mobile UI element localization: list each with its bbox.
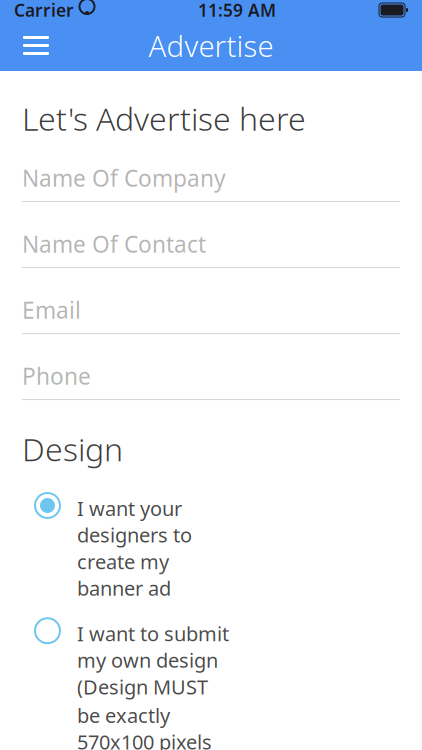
staticText: 11:59 AM bbox=[198, 0, 276, 21]
staticText: I want your designers to create my banne… bbox=[77, 495, 192, 601]
button[interactable]: I want your designers to create my banne… bbox=[34, 492, 400, 601]
staticText: I want to submit my own design (Design M… bbox=[77, 620, 229, 700]
staticText: Carrier bbox=[14, 0, 74, 21]
button[interactable]: Name Of Contact bbox=[22, 229, 400, 267]
button[interactable]: Menu bbox=[12, 23, 60, 67]
button[interactable]: Phone bbox=[22, 361, 400, 399]
button[interactable]: I want to submit my own design (Design M… bbox=[34, 617, 400, 750]
staticText: Name Of Contact bbox=[22, 229, 206, 259]
staticText: be exactly 570x100 pixels at 72 dpi) bbox=[77, 702, 212, 750]
staticText: Phone bbox=[22, 361, 91, 391]
staticText: Advertise bbox=[148, 26, 273, 65]
staticText: Name Of Company bbox=[22, 163, 226, 193]
button[interactable]: Name Of Company bbox=[22, 163, 400, 201]
button[interactable]: Email bbox=[22, 295, 400, 333]
staticText: Design bbox=[22, 427, 123, 470]
staticText: Email bbox=[22, 295, 81, 325]
staticText: Let's Advertise here bbox=[22, 97, 306, 139]
